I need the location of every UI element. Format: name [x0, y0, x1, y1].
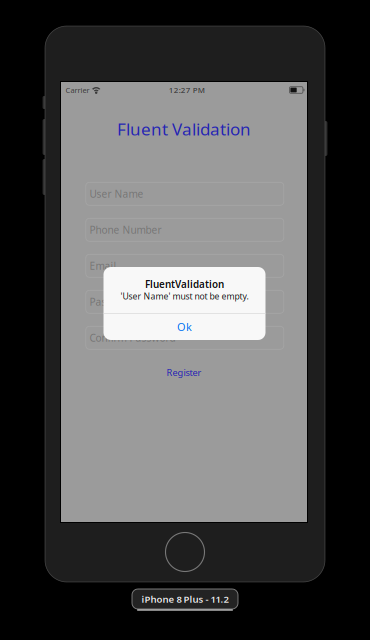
- staticText: 'User Name' must not be empty.: [120, 290, 248, 302]
- staticText: Ok: [177, 319, 192, 334]
- staticText: Email: [90, 259, 117, 273]
- staticText: Register: [166, 366, 201, 379]
- staticText: Fluent Validation: [117, 117, 251, 141]
- staticText: User Name: [90, 187, 144, 201]
- staticText: Password: [90, 295, 136, 309]
- staticText: Carrier: [65, 85, 89, 95]
- staticText: Confirm Password: [90, 331, 176, 345]
- staticText: 12:27 PM: [169, 85, 205, 95]
- staticText: FluentValidation: [145, 277, 224, 291]
- staticText: Phone Number: [90, 223, 162, 237]
- button[interactable]: Register: [61, 365, 307, 379]
- staticText: iPhone 8 Plus - 11.2: [141, 592, 228, 606]
- button[interactable]: Ok: [103, 314, 265, 340]
